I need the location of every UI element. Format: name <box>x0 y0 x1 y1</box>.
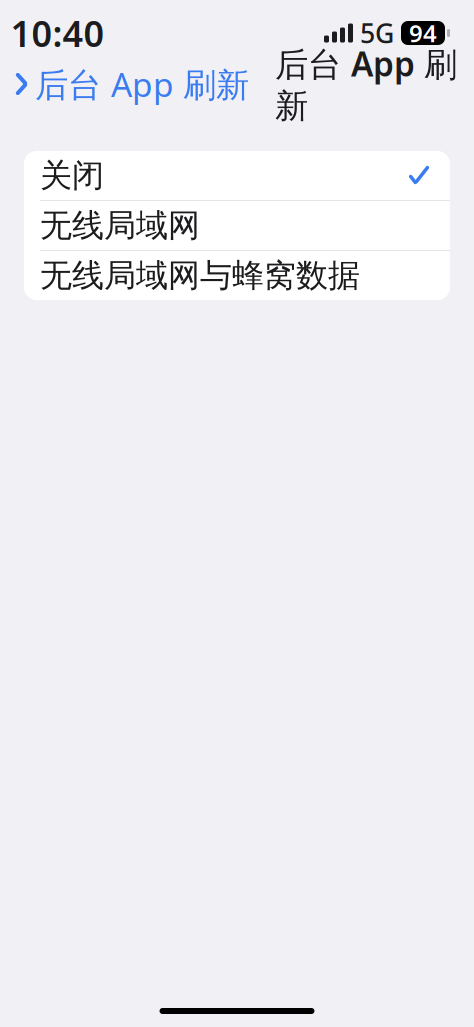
staticText: 无线局域网与蜂窝数据 <box>40 256 360 295</box>
staticText: 无线局域网 <box>40 206 200 245</box>
button[interactable]: 关闭 <box>24 151 450 200</box>
staticText: 94 <box>409 17 437 49</box>
staticText: 后台 App 刷新 <box>275 41 457 127</box>
button[interactable]: 无线局域网与蜂窝数据 <box>24 251 450 300</box>
button[interactable]: 返回 后台 App 刷新 <box>0 56 249 112</box>
staticText: 后台 App 刷新 <box>35 62 249 106</box>
button[interactable]: 无线局域网 <box>24 201 450 250</box>
staticText: 关闭 <box>40 156 104 195</box>
staticText: 10:40 <box>10 9 104 57</box>
staticText: 5G <box>360 15 394 51</box>
